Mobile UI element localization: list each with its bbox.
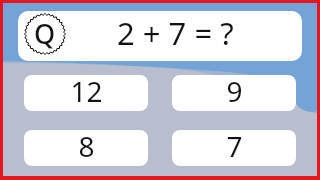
button[interactable]: 9 — [172, 75, 296, 111]
staticText: 7 — [226, 130, 243, 163]
button[interactable]: 7 — [172, 130, 296, 166]
button[interactable]: 8 — [24, 130, 148, 166]
button[interactable]: 12 — [24, 75, 148, 111]
staticText: Q — [34, 15, 56, 52]
staticText: 2 + 7 = ? — [117, 12, 234, 54]
staticText: 9 — [226, 75, 243, 108]
staticText: 12 — [70, 75, 103, 108]
staticText: 8 — [78, 130, 95, 163]
button[interactable]: Q — [18, 11, 302, 61]
